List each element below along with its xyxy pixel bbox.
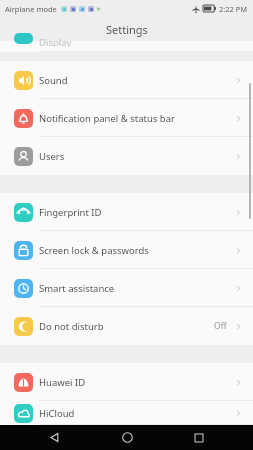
- button[interactable]: Recent apps: [181, 425, 217, 450]
- staticText: Screen lock & passwords: [39, 244, 234, 257]
- staticText: Off: [214, 320, 227, 332]
- staticText: Airplane mode: [5, 4, 57, 14]
- staticText: HiCloud: [39, 407, 234, 420]
- staticText: Huawei ID: [39, 376, 234, 389]
- button[interactable]: HiCloud: [0, 401, 253, 425]
- button[interactable]: Notification panel & status bar: [0, 99, 253, 137]
- staticText: Settings: [106, 22, 148, 37]
- staticText: Users: [39, 150, 234, 163]
- staticText: Fingerprint ID: [39, 206, 234, 219]
- button[interactable]: Back: [36, 425, 72, 450]
- staticText: Sound: [39, 74, 234, 87]
- staticText: Display: [39, 36, 72, 47]
- button[interactable]: Home: [109, 425, 145, 450]
- button[interactable]: Do not disturb: [0, 307, 253, 345]
- button[interactable]: Sound: [0, 61, 253, 99]
- staticText: Do not disturb: [39, 320, 214, 333]
- button[interactable]: Users: [0, 137, 253, 175]
- staticText: Smart assistance: [39, 282, 234, 295]
- button[interactable]: Display: [0, 41, 253, 52]
- staticText: Notification panel & status bar: [39, 112, 234, 125]
- button[interactable]: Fingerprint ID: [0, 193, 253, 231]
- button[interactable]: Smart assistance: [0, 269, 253, 307]
- staticText: 2:22 PM: [219, 4, 248, 14]
- button[interactable]: Huawei ID: [0, 363, 253, 401]
- button[interactable]: Screen lock & passwords: [0, 231, 253, 269]
